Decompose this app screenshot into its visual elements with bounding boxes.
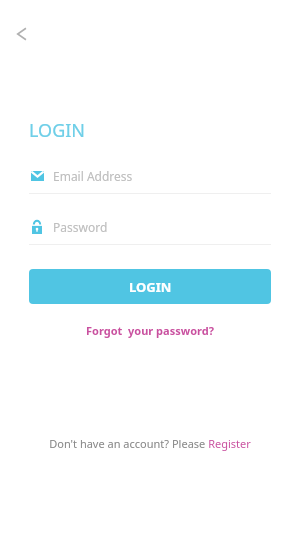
staticText: LOGIN bbox=[129, 278, 172, 296]
staticText: Email Address bbox=[53, 168, 133, 184]
button[interactable]: Password bbox=[29, 216, 271, 245]
button[interactable]: Email Address bbox=[29, 165, 271, 194]
button[interactable]: Don't have an account? Please Register bbox=[43, 433, 257, 454]
button[interactable]: Forgot your password? bbox=[80, 320, 220, 341]
button[interactable]: LOGIN bbox=[29, 269, 271, 304]
button[interactable]: Back bbox=[4, 16, 40, 52]
staticText: Don't have an account? Please Register bbox=[49, 436, 251, 451]
staticText: Forgot your password? bbox=[86, 323, 214, 338]
staticText: Password bbox=[53, 219, 108, 235]
staticText: LOGIN bbox=[29, 118, 86, 143]
